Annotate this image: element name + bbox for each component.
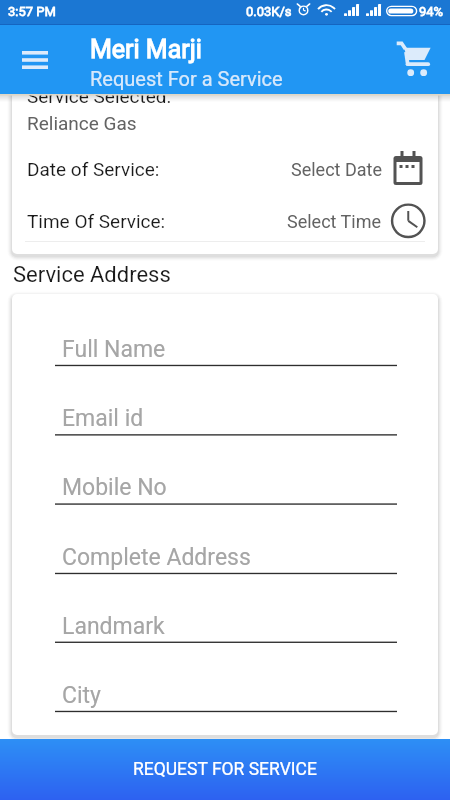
button[interactable]: Shopping cart [380, 25, 446, 94]
staticText: Select Time [287, 211, 382, 232]
staticText: Landmark [62, 613, 165, 640]
button[interactable]: Date of Service: [27, 144, 425, 194]
staticText: Meri Marji [90, 35, 202, 64]
button[interactable]: Open navigation menu [0, 25, 70, 94]
staticText: Time Of Service: [27, 210, 166, 232]
staticText: REQUEST FOR SERVICE [133, 759, 317, 780]
button[interactable]: REQUEST FOR SERVICE [0, 739, 450, 800]
button[interactable]: Full Name [43, 316, 397, 368]
staticText: Select Date [291, 159, 382, 180]
button[interactable]: Mobile No [43, 454, 397, 506]
staticText: Service Selected: [27, 85, 172, 107]
button[interactable]: Landmark [43, 593, 397, 645]
button[interactable]: City [43, 662, 397, 714]
staticText: Mobile No [62, 474, 167, 501]
staticText: 0.03K/s [246, 4, 292, 19]
staticText: Email id [62, 405, 144, 432]
staticText: Date of Service: [27, 158, 160, 180]
staticText: Complete Address [62, 544, 251, 571]
staticText: Full Name [62, 336, 166, 363]
button[interactable]: Time Of Service: [27, 196, 425, 246]
staticText: 3:57 PM [8, 4, 56, 19]
staticText: City [62, 682, 101, 709]
staticText: Reliance Gas [27, 112, 137, 134]
staticText: 94% [419, 4, 444, 19]
staticText: Service Address [13, 262, 171, 288]
button[interactable]: Complete Address [43, 524, 397, 576]
staticText: Request For a Service [90, 67, 283, 90]
button[interactable]: Email id [43, 385, 397, 437]
